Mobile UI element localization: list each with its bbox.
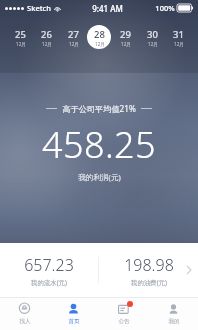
staticText: 我的油费(元) [131, 278, 167, 287]
staticText: 12月 [69, 41, 79, 47]
button[interactable]: 30 [140, 25, 164, 49]
button[interactable]: 31 [166, 25, 190, 49]
staticText: 27 [68, 28, 79, 41]
staticText: 657.23 [24, 254, 74, 276]
staticText: 26 [41, 28, 52, 41]
button[interactable]: 657.23 [0, 243, 98, 297]
staticText: 28 [94, 28, 105, 41]
button[interactable]: 28 [87, 25, 111, 49]
staticText: 100% [155, 3, 175, 13]
button[interactable]: 27 [61, 25, 85, 49]
staticText: 12月 [121, 41, 131, 47]
button[interactable]: 公告 [98, 297, 148, 330]
staticText: 29 [120, 28, 131, 41]
button[interactable]: 我的 [148, 297, 198, 330]
button[interactable]: 25 [8, 25, 32, 49]
staticText: 458.25 [42, 120, 156, 169]
button[interactable]: 198.98 [99, 243, 198, 297]
button[interactable]: 29 [113, 25, 137, 49]
button[interactable]: 首页 [49, 297, 98, 330]
staticText: 我的流水(元) [31, 278, 67, 287]
staticText: 31 [173, 28, 184, 41]
staticText: 我的利润(元) [78, 172, 121, 182]
staticText: 30 [147, 28, 158, 41]
staticText: 公告 [118, 318, 130, 325]
staticText: 高于公司平均值21% [62, 103, 136, 114]
staticText: Sketch [27, 3, 51, 13]
staticText: 12月 [148, 41, 158, 47]
staticText: 找人 [19, 318, 31, 325]
button[interactable]: 26 [34, 25, 58, 49]
staticText: 12月 [95, 41, 105, 47]
staticText: 首页 [68, 318, 80, 325]
staticText: 198.98 [124, 254, 174, 276]
staticText: 12月 [174, 41, 184, 47]
staticText: 12月 [16, 41, 26, 47]
staticText: 12月 [42, 41, 52, 47]
button[interactable]: 找人 [0, 297, 49, 330]
staticText: 25 [15, 28, 26, 41]
staticText: 我的 [168, 318, 180, 325]
staticText: 9:41 AM [92, 3, 123, 14]
